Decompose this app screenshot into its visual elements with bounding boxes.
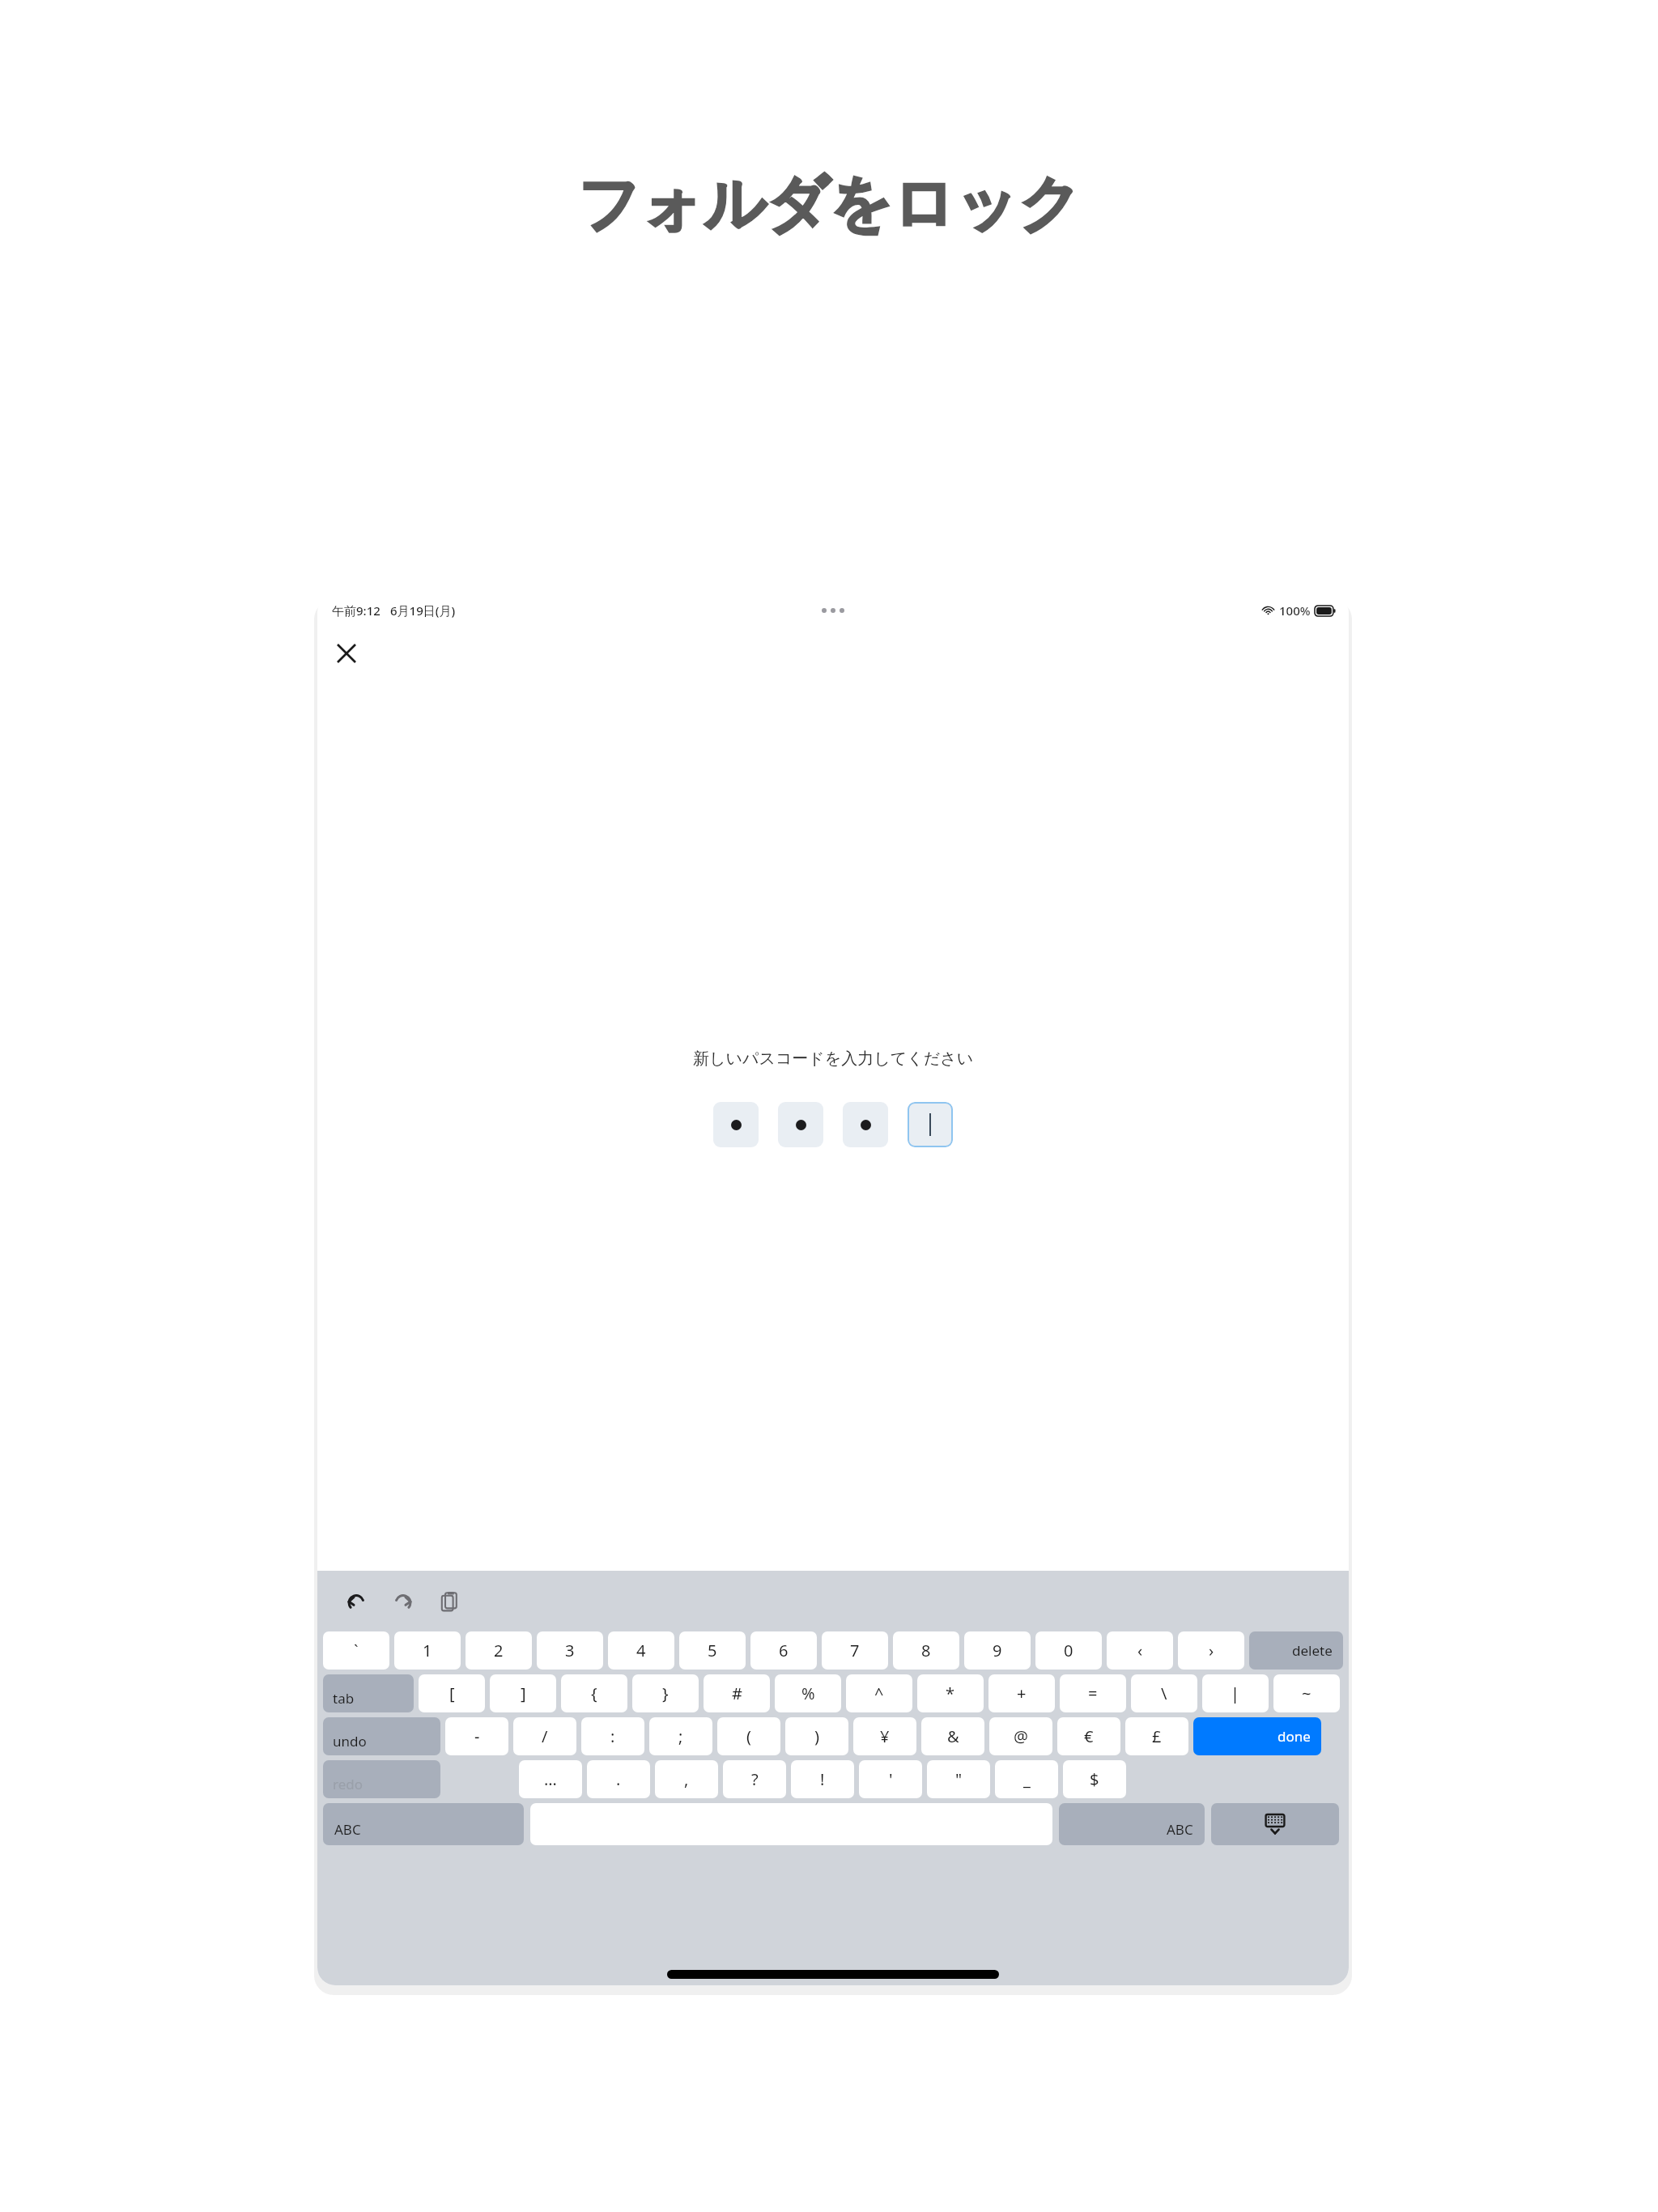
button[interactable]: = bbox=[1060, 1674, 1126, 1712]
staticText: _ bbox=[1023, 1768, 1031, 1790]
button[interactable]: : bbox=[581, 1717, 644, 1755]
button[interactable]: @ bbox=[989, 1717, 1052, 1755]
button[interactable] bbox=[778, 1102, 823, 1147]
staticText: tab bbox=[333, 1689, 355, 1708]
button[interactable]: " bbox=[927, 1760, 990, 1798]
button[interactable]: redo bbox=[323, 1760, 440, 1798]
button[interactable]: done bbox=[1193, 1717, 1321, 1755]
button[interactable]: ¥ bbox=[853, 1717, 916, 1755]
button[interactable]: ! bbox=[791, 1760, 854, 1798]
button[interactable]: ABC bbox=[1059, 1803, 1205, 1845]
button[interactable]: undo bbox=[323, 1717, 440, 1755]
button[interactable]: ‹ bbox=[1107, 1631, 1173, 1670]
button[interactable] bbox=[530, 1803, 1052, 1845]
button[interactable]: 6 bbox=[750, 1631, 817, 1670]
button[interactable]: ] bbox=[490, 1674, 556, 1712]
staticText: ; bbox=[678, 1725, 683, 1747]
button[interactable]: 5 bbox=[679, 1631, 746, 1670]
button[interactable]: € bbox=[1057, 1717, 1120, 1755]
staticText: $ bbox=[1090, 1768, 1099, 1790]
button[interactable] bbox=[843, 1102, 888, 1147]
staticText: ) bbox=[814, 1725, 819, 1747]
button[interactable]: £ bbox=[1125, 1717, 1188, 1755]
button[interactable]: … bbox=[519, 1760, 582, 1798]
staticText: & bbox=[947, 1725, 959, 1747]
button[interactable] bbox=[713, 1102, 759, 1147]
staticText: redo bbox=[333, 1775, 363, 1793]
button[interactable]: _ bbox=[995, 1760, 1058, 1798]
button[interactable]: ; bbox=[649, 1717, 712, 1755]
staticText: , bbox=[684, 1768, 689, 1790]
button[interactable]: / bbox=[513, 1717, 576, 1755]
staticText: 6月19日(月) bbox=[390, 602, 456, 619]
staticText: + bbox=[1017, 1682, 1027, 1704]
staticText: # bbox=[732, 1682, 742, 1704]
staticText: 8 bbox=[921, 1640, 931, 1661]
button[interactable]: $ bbox=[1063, 1760, 1126, 1798]
staticText: = bbox=[1088, 1682, 1098, 1704]
button[interactable]: ` bbox=[323, 1631, 389, 1670]
staticText: : bbox=[610, 1725, 615, 1747]
button[interactable]: } bbox=[632, 1674, 699, 1712]
button[interactable]: ? bbox=[723, 1760, 786, 1798]
staticText: フォルダをロック bbox=[577, 166, 1082, 244]
staticText: 4 bbox=[636, 1640, 646, 1661]
button[interactable]: + bbox=[988, 1674, 1055, 1712]
button[interactable]: Hide keyboard bbox=[1211, 1803, 1339, 1845]
staticText: ABC bbox=[1167, 1820, 1193, 1839]
button[interactable]: Paste bbox=[431, 1582, 470, 1621]
button[interactable]: { bbox=[561, 1674, 627, 1712]
button[interactable]: 1 bbox=[394, 1631, 461, 1670]
button[interactable]: 3 bbox=[537, 1631, 603, 1670]
staticText: 6 bbox=[779, 1640, 789, 1661]
staticText: … bbox=[544, 1768, 557, 1790]
staticText: 2 bbox=[494, 1640, 504, 1661]
staticText: ] bbox=[521, 1682, 526, 1704]
button[interactable]: › bbox=[1178, 1631, 1244, 1670]
button[interactable]: 4 bbox=[608, 1631, 674, 1670]
button[interactable]: ABC bbox=[323, 1803, 524, 1845]
button[interactable]: Redo bbox=[384, 1582, 423, 1621]
staticText: ^ bbox=[874, 1682, 884, 1704]
staticText: 5 bbox=[708, 1640, 717, 1661]
staticText: { bbox=[591, 1682, 597, 1704]
staticText: ? bbox=[751, 1768, 759, 1790]
staticText: ' bbox=[889, 1768, 893, 1790]
button[interactable]: ^ bbox=[846, 1674, 912, 1712]
button[interactable]: tab bbox=[323, 1674, 414, 1712]
button[interactable]: # bbox=[704, 1674, 770, 1712]
staticText: ‹ bbox=[1137, 1640, 1143, 1661]
button[interactable]: 0 bbox=[1035, 1631, 1102, 1670]
button[interactable]: 9 bbox=[964, 1631, 1031, 1670]
button[interactable] bbox=[908, 1102, 953, 1147]
staticText: @ bbox=[1014, 1725, 1028, 1747]
staticText: | bbox=[1231, 1682, 1240, 1704]
staticText: › bbox=[1209, 1640, 1214, 1661]
staticText: ` bbox=[354, 1640, 359, 1661]
staticText: ABC bbox=[334, 1820, 361, 1839]
button[interactable]: % bbox=[775, 1674, 841, 1712]
button[interactable]: | bbox=[1202, 1674, 1269, 1712]
staticText: [ bbox=[449, 1682, 455, 1704]
button[interactable]: ' bbox=[859, 1760, 922, 1798]
staticText: 7 bbox=[850, 1640, 860, 1661]
button[interactable]: * bbox=[917, 1674, 984, 1712]
button[interactable]: 8 bbox=[893, 1631, 959, 1670]
staticText: ¥ bbox=[880, 1725, 890, 1747]
button[interactable]: ~ bbox=[1273, 1674, 1340, 1712]
staticText: 0 bbox=[1064, 1640, 1073, 1661]
button[interactable]: ) bbox=[785, 1717, 848, 1755]
staticText: undo bbox=[333, 1732, 367, 1750]
button[interactable]: Undo bbox=[337, 1582, 376, 1621]
button[interactable]: - bbox=[445, 1717, 508, 1755]
button[interactable]: 7 bbox=[822, 1631, 888, 1670]
button[interactable]: delete bbox=[1249, 1631, 1343, 1670]
button[interactable]: . bbox=[587, 1760, 650, 1798]
button[interactable]: \ bbox=[1131, 1674, 1197, 1712]
button[interactable]: 2 bbox=[466, 1631, 532, 1670]
button[interactable]: [ bbox=[419, 1674, 485, 1712]
button[interactable]: & bbox=[921, 1717, 984, 1755]
button[interactable]: Close bbox=[327, 634, 366, 673]
button[interactable]: ( bbox=[717, 1717, 780, 1755]
button[interactable]: , bbox=[655, 1760, 718, 1798]
